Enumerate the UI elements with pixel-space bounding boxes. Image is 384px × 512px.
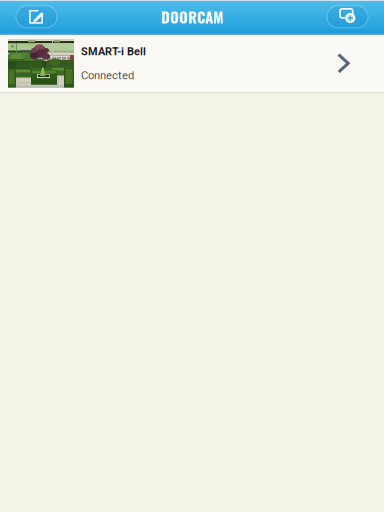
staticText: Connected: [81, 69, 134, 82]
button[interactable]: Edit devices: [16, 6, 57, 28]
button[interactable]: SMART-i Bell: [0, 35, 384, 92]
staticText: DOORCAM: [161, 6, 223, 28]
staticText: SMART-i Bell: [81, 45, 146, 58]
button[interactable]: Add camera: [327, 6, 368, 28]
